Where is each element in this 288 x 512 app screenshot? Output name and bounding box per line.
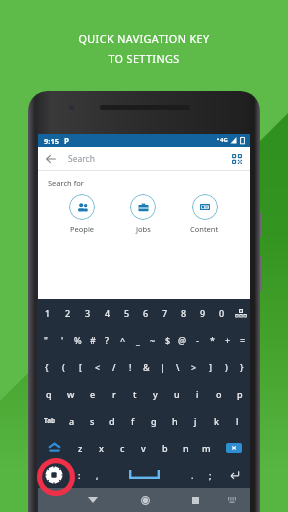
button[interactable]: g (143, 407, 164, 434)
button[interactable]: & (138, 353, 154, 380)
button[interactable]: s (82, 407, 102, 434)
staticText: } (240, 361, 244, 373)
button[interactable]: e (82, 380, 103, 407)
button[interactable]: v (133, 434, 154, 461)
staticText: 8 (181, 307, 187, 319)
button[interactable]: } (234, 353, 250, 380)
staticText: @ (178, 334, 187, 346)
button[interactable]: < (89, 353, 106, 380)
button[interactable]: m (196, 434, 217, 461)
button[interactable]: Settings (38, 461, 70, 488)
button[interactable]: ] (202, 353, 218, 380)
button[interactable]: d (102, 407, 122, 434)
button[interactable]: ! (122, 353, 138, 380)
button[interactable]: 2 (58, 299, 78, 326)
button[interactable]: 5 (117, 299, 136, 326)
button[interactable]: z (70, 434, 91, 461)
button[interactable]: | (154, 353, 170, 380)
staticText: \ (176, 361, 180, 373)
staticText: ( (62, 361, 65, 373)
button[interactable]: , (88, 461, 106, 488)
button[interactable]: . (183, 461, 201, 488)
button[interactable]: c (112, 434, 133, 461)
button[interactable]: x (91, 434, 112, 461)
button[interactable]: \ (170, 353, 186, 380)
button[interactable]: Content (186, 194, 223, 234)
button[interactable]: @ (175, 326, 190, 353)
button[interactable]: h (164, 407, 185, 434)
button[interactable]: = (235, 326, 250, 353)
button[interactable]: + (220, 326, 235, 353)
staticText: ~ (150, 334, 156, 346)
button[interactable]: o (208, 380, 229, 407)
button[interactable]: _ (130, 326, 145, 353)
button[interactable]: ? (100, 326, 115, 353)
button[interactable]: Home (133, 488, 157, 512)
button[interactable]: p (229, 380, 250, 407)
button[interactable]: Switch keyboard (220, 488, 244, 512)
button[interactable]: - (190, 326, 205, 353)
button[interactable]: i (187, 380, 208, 407)
button[interactable]: w (60, 380, 82, 407)
button[interactable]: y (145, 380, 166, 407)
button[interactable]: r (103, 380, 124, 407)
button[interactable]: > (186, 353, 202, 380)
button[interactable]: Recents (183, 488, 207, 512)
button[interactable]: Back (81, 488, 105, 512)
staticText: QUICK NAVIGATION KEY (78, 31, 210, 46)
button[interactable]: Scan QR code (228, 150, 246, 168)
staticText: { (45, 361, 49, 373)
button[interactable]: ) (218, 353, 234, 380)
button[interactable]: a (62, 407, 82, 434)
button[interactable]: ' (54, 326, 70, 353)
staticText: = (240, 334, 246, 346)
button[interactable]: ^ (115, 326, 130, 353)
button[interactable]: 9 (193, 299, 212, 326)
button[interactable]: Keyboard layout (231, 299, 250, 326)
button[interactable]: # (85, 326, 100, 353)
button[interactable]: Jobs (126, 194, 160, 234)
button[interactable]: : (70, 461, 88, 488)
button[interactable]: $ (160, 326, 175, 353)
button[interactable]: ; (201, 461, 219, 488)
button[interactable]: 0 (212, 299, 231, 326)
staticText: ^ (120, 334, 126, 346)
staticText: 9:15 (44, 136, 59, 146)
button[interactable]: f (122, 407, 143, 434)
staticText: u (174, 388, 180, 400)
staticText: ; (209, 469, 212, 481)
button[interactable]: * (205, 326, 220, 353)
button[interactable]: % (70, 326, 85, 353)
button[interactable]: Space (106, 461, 183, 488)
button[interactable]: q (38, 380, 60, 407)
button[interactable]: 6 (136, 299, 155, 326)
button[interactable]: { (38, 353, 55, 380)
button[interactable]: ~ (145, 326, 160, 353)
staticText: k (214, 415, 220, 427)
button[interactable]: ( (55, 353, 72, 380)
button[interactable]: 7 (155, 299, 174, 326)
staticText: Tab (44, 416, 56, 425)
button[interactable]: " (38, 326, 54, 353)
button[interactable]: Backspace (217, 434, 250, 461)
button[interactable]: b (154, 434, 175, 461)
button[interactable]: k (206, 407, 227, 434)
button[interactable]: 4 (98, 299, 117, 326)
button[interactable]: u (166, 380, 187, 407)
button[interactable]: n (175, 434, 196, 461)
button[interactable]: j (185, 407, 206, 434)
staticText: P (64, 135, 69, 146)
button[interactable]: [ (72, 353, 89, 380)
button[interactable]: Back (42, 150, 60, 168)
button[interactable]: People (65, 194, 99, 234)
button[interactable]: l (227, 407, 248, 434)
staticText: d (109, 415, 115, 427)
button[interactable]: Shift (38, 434, 70, 461)
button[interactable]: Tab (38, 407, 62, 434)
button[interactable]: 8 (174, 299, 193, 326)
button[interactable]: / (106, 353, 122, 380)
button[interactable]: t (124, 380, 145, 407)
button[interactable]: 1 (38, 299, 58, 326)
button[interactable]: Enter (219, 461, 250, 488)
button[interactable]: 3 (78, 299, 98, 326)
